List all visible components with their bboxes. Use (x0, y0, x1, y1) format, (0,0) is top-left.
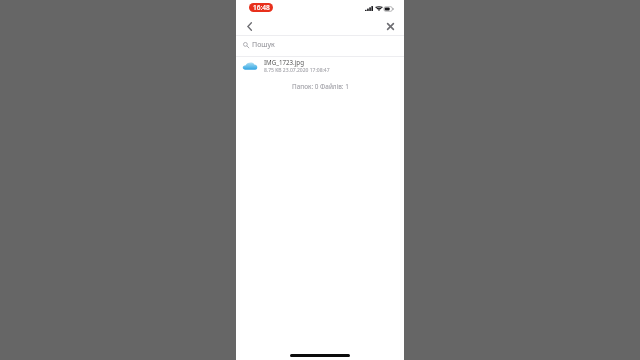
staticText: IMG_1723.jpg (264, 58, 304, 66)
button[interactable]: Back (241, 18, 257, 34)
staticText: Пошук (252, 40, 275, 50)
button[interactable]: Пошук (236, 35, 404, 56)
staticText: 16:48 (253, 3, 270, 12)
button[interactable]: IMG_1723.jpg (236, 56, 404, 75)
button[interactable]: Close (382, 18, 398, 34)
staticText: Папок: 0 Файлів: 1 (292, 82, 349, 91)
staticText: 8.75 KB 23.07.2020 17:08:47 (264, 67, 330, 74)
